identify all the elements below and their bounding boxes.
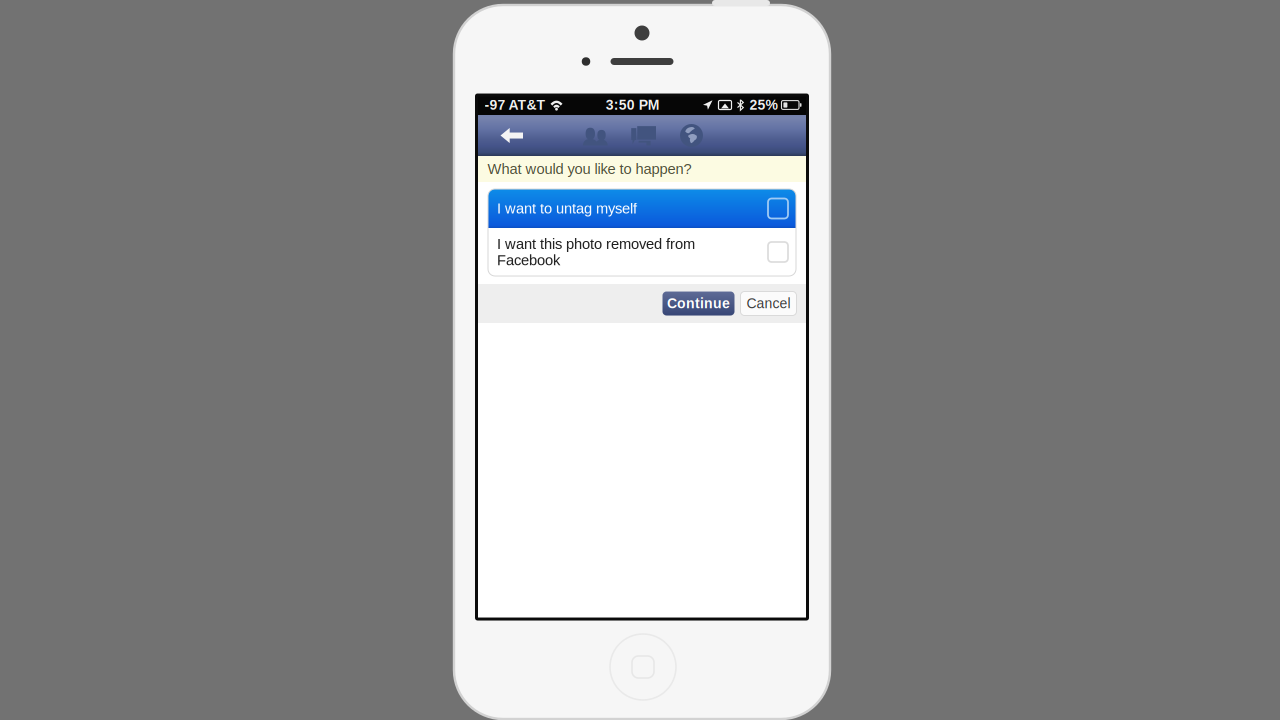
- staticText: Cancel: [746, 296, 790, 311]
- button[interactable]: Back: [476, 115, 540, 156]
- staticText: I want to untag myself: [497, 200, 637, 217]
- staticText: I want this photo removed from Facebook: [497, 236, 695, 268]
- staticText: 3:50 PM: [606, 97, 660, 113]
- staticText: What would you like to happen?: [487, 161, 691, 177]
- button[interactable]: Notifications: [667, 115, 715, 156]
- button[interactable]: Messages: [619, 115, 667, 156]
- staticText: 25%: [749, 97, 777, 113]
- staticText: Continue: [667, 296, 730, 311]
- button[interactable]: I want to untag myself: [488, 189, 796, 228]
- button[interactable]: Friend requests: [571, 115, 619, 156]
- button[interactable]: Cancel: [740, 291, 796, 315]
- staticText: -97 AT&T: [484, 97, 545, 113]
- button[interactable]: Continue: [662, 291, 734, 315]
- button[interactable]: I want this photo removed from Facebook: [488, 228, 796, 276]
